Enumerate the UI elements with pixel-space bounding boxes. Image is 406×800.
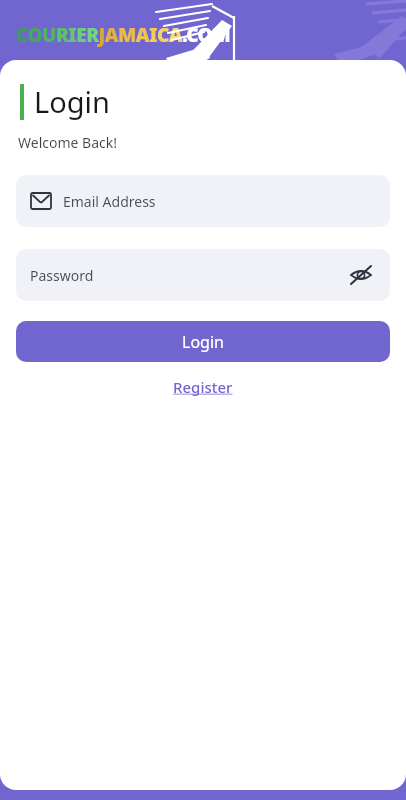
button[interactable]: Register (165, 375, 241, 399)
staticText: Email Address (63, 192, 156, 211)
button[interactable]: Password (16, 249, 390, 301)
staticText: Password (30, 266, 346, 285)
button[interactable]: Login (16, 321, 390, 362)
staticText: COURIERJAMAICA.COM (16, 22, 231, 48)
staticText: Login (182, 331, 224, 353)
staticText: Login (34, 82, 110, 121)
button[interactable]: Show password (346, 260, 376, 290)
button[interactable]: Email Address (16, 175, 390, 227)
staticText: Register (173, 377, 233, 397)
staticText: Welcome Back! (18, 133, 117, 152)
other: Courier Jamaica logo (150, 2, 216, 58)
